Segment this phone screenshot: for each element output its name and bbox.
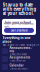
staticText: Announcements xyxy=(9,46,31,53)
staticText: Everything in one place xyxy=(2,36,30,43)
staticText: Tap a card to jump straight in xyxy=(2,43,38,46)
button[interactable]: Calendar xyxy=(0,63,40,71)
staticText: Assignments xyxy=(9,56,30,59)
staticText: Sign in to see classes and news. xyxy=(4,22,34,28)
button[interactable]: Get started xyxy=(4,28,34,33)
staticText: 2 due tomorrow xyxy=(9,59,25,62)
staticText: Stay up to date xyxy=(2,2,32,7)
staticText: with everything xyxy=(2,7,36,12)
staticText: Get started xyxy=(10,29,27,32)
staticText: Games and events xyxy=(9,67,27,70)
button[interactable]: Assignments xyxy=(0,55,40,63)
staticText: 3 new this week xyxy=(9,53,26,56)
staticText: at your school. xyxy=(2,11,33,16)
staticText: Join your school xyxy=(4,20,31,24)
staticText: Calendar xyxy=(9,64,23,67)
button[interactable]: Announcements xyxy=(0,47,40,55)
